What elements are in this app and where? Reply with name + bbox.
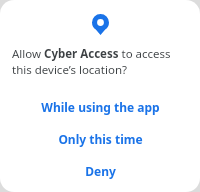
button[interactable]: Deny — [0, 155, 200, 187]
button[interactable]: While using the app — [0, 91, 200, 123]
button[interactable]: Only this time — [0, 123, 200, 155]
staticText: While using the app — [41, 99, 160, 115]
staticText: Deny — [85, 163, 116, 179]
staticText: Only this time — [58, 131, 143, 147]
staticText: Allow Cyber Access to access this device… — [12, 46, 190, 77]
other: Location — [92, 14, 109, 35]
